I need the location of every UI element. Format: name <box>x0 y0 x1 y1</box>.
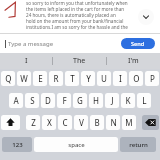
button[interactable]: 123 <box>2 137 32 152</box>
staticText: X <box>47 117 52 128</box>
staticText: so sorry to inform you that unfortunatel… <box>26 0 128 6</box>
button[interactable]: H <box>89 93 103 108</box>
staticText: Y <box>86 73 91 84</box>
button[interactable]: The <box>53 53 106 69</box>
staticText: K <box>125 95 131 106</box>
button[interactable]: Scroll to bottom <box>138 9 154 25</box>
staticText: M <box>125 117 133 128</box>
button[interactable]: return <box>120 137 156 152</box>
staticText: I'm <box>128 56 139 66</box>
button[interactable]: I <box>113 71 127 86</box>
staticText: R <box>53 73 59 84</box>
button[interactable]: E <box>33 71 47 86</box>
button[interactable]: F <box>57 93 71 108</box>
button[interactable]: K <box>121 93 135 108</box>
button[interactable]: N <box>106 115 120 130</box>
button[interactable]: S <box>25 93 39 108</box>
staticText: Z <box>31 117 36 128</box>
staticText: S <box>30 95 35 106</box>
staticText: F <box>62 95 67 106</box>
staticText: 123 <box>12 141 23 149</box>
staticText: Q <box>5 73 12 84</box>
button[interactable]: V <box>74 115 88 130</box>
staticText: P <box>150 73 155 84</box>
staticText: The <box>73 56 86 66</box>
staticText: the items left placed in the cart for mo… <box>26 6 125 12</box>
staticText: C <box>62 117 68 128</box>
staticText: H <box>93 95 99 106</box>
button[interactable]: Q <box>1 71 15 86</box>
button[interactable]: R <box>49 71 63 86</box>
staticText: return <box>129 141 148 149</box>
button[interactable]: M <box>122 115 136 130</box>
staticText: B <box>94 117 100 128</box>
staticText: N <box>110 117 117 128</box>
button[interactable]: I'm <box>107 53 160 69</box>
staticText: Type a message <box>8 40 54 48</box>
staticText: T <box>70 73 75 84</box>
button[interactable]: X <box>42 115 56 130</box>
button[interactable]: Y <box>81 71 95 86</box>
button[interactable]: Shift <box>1 115 20 130</box>
button[interactable]: L <box>137 93 151 108</box>
button[interactable]: Backspace <box>142 115 159 130</box>
staticText: 24 hours, there is automatically placed … <box>26 12 116 18</box>
staticText: D <box>45 95 51 106</box>
button[interactable]: O <box>129 71 143 86</box>
staticText: U <box>101 73 107 84</box>
staticText: institutions.I am so sorry for the hassl… <box>26 24 128 30</box>
button[interactable]: J <box>105 93 119 108</box>
button[interactable]: P <box>145 71 159 86</box>
button[interactable]: Z <box>26 115 40 130</box>
button[interactable]: C <box>58 115 72 130</box>
staticText: O <box>133 73 140 84</box>
button[interactable]: space <box>34 137 118 152</box>
staticText: A <box>13 95 19 106</box>
staticText: E <box>38 73 43 84</box>
button[interactable]: Send <box>121 38 155 49</box>
button[interactable]: W <box>17 71 31 86</box>
button[interactable]: B <box>90 115 104 130</box>
button[interactable]: Type a message <box>5 34 121 53</box>
staticText: Send <box>131 40 145 48</box>
button[interactable]: U <box>97 71 111 86</box>
staticText: space <box>68 141 85 149</box>
staticText: hold on the amount from your bank/financ… <box>26 18 124 24</box>
button[interactable]: G <box>73 93 87 108</box>
button[interactable]: T <box>65 71 79 86</box>
staticText: V <box>79 117 84 128</box>
button[interactable]: I <box>0 53 52 69</box>
button[interactable]: D <box>41 93 55 108</box>
staticText: I <box>25 56 28 66</box>
staticText: L <box>142 95 147 106</box>
staticText: G <box>77 95 83 106</box>
staticText: J <box>111 95 114 106</box>
button[interactable]: A <box>9 93 23 108</box>
staticText: W <box>20 73 28 84</box>
staticText: I <box>119 73 122 84</box>
